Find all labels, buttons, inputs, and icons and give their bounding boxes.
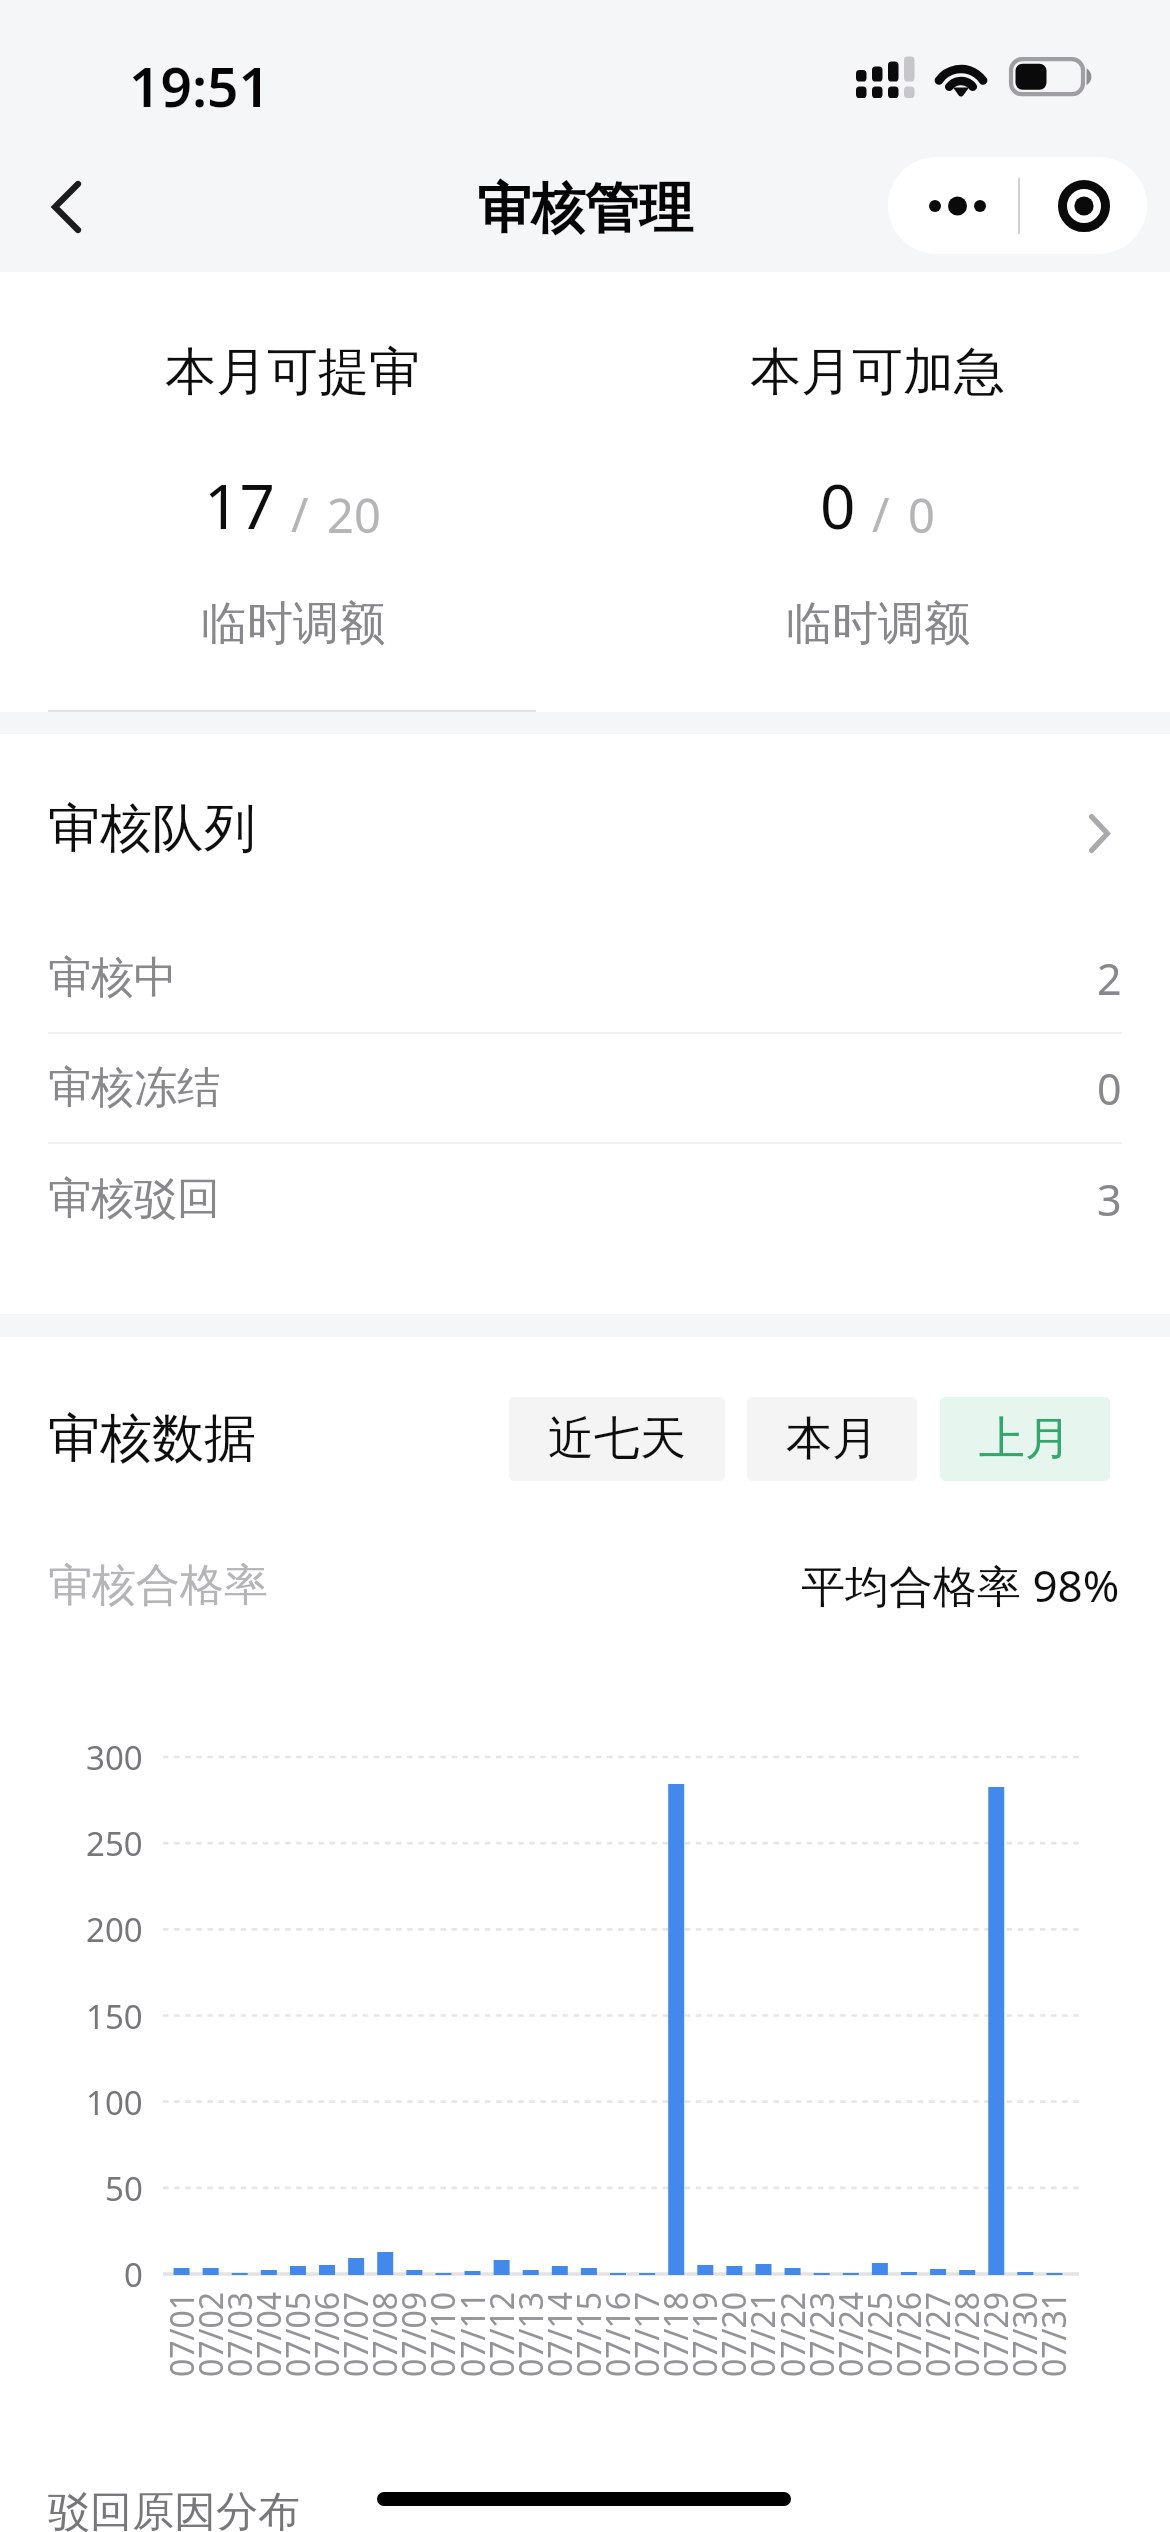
staticText: 17 [204,463,275,547]
staticText: 临时调额 [201,595,385,653]
staticText: 0 [820,463,856,547]
staticText: 200 [86,1907,143,1952]
staticText: / [291,482,309,546]
button[interactable]: 审核冻结 [48,1034,1122,1142]
button[interactable]: Close mini program [1020,157,1147,254]
staticText: 100 [86,2080,143,2125]
staticText: 19:51 [129,48,271,123]
staticText: 审核冻结 [48,1061,220,1115]
staticText: / [872,482,890,546]
staticText: 审核管理 [477,175,693,243]
staticText: 审核队列 [48,796,256,862]
button[interactable]: More [888,157,1018,254]
staticText: 近七天 [548,1410,686,1468]
button[interactable]: 近七天 [509,1397,725,1481]
staticText: 0 [124,2252,143,2297]
staticText: 审核驳回 [48,1172,220,1226]
button[interactable]: 本月可提审 [0,272,585,712]
button[interactable]: 上月 [940,1397,1110,1481]
staticText: 50 [105,2166,143,2211]
staticText: 250 [86,1821,143,1866]
staticText: 审核合格率 [48,1558,268,1613]
button[interactable]: Back [10,150,122,264]
staticText: 150 [86,1994,143,2039]
button[interactable]: 审核中 [48,924,1122,1032]
staticText: 本月 [786,1410,878,1468]
button[interactable]: 本月 [747,1397,917,1481]
staticText: 本月可加急 [750,340,1005,404]
staticText: 平均合格率 98% [801,1555,1120,1615]
staticText: 上月 [979,1410,1071,1468]
button[interactable]: 临时调额 [177,585,409,663]
staticText: 临时调额 [786,595,970,653]
button[interactable]: 本月可加急 [585,272,1170,712]
staticText: 2 [1097,949,1122,1008]
staticText: 本月可提审 [165,340,420,404]
button[interactable]: 审核驳回 [48,1144,1122,1254]
staticText: 审核中 [48,951,177,1005]
staticText: 3 [1097,1170,1122,1229]
staticText: 0 [908,483,935,547]
staticText: 审核数据 [48,1406,256,1472]
staticText: 0 [1097,1059,1122,1118]
button[interactable]: 临时调额 [762,585,994,663]
button[interactable]: 审核队列 [0,734,1170,924]
staticText: 300 [86,1735,143,1780]
staticText: 20 [327,483,381,547]
staticText: 驳回原因分布 [48,2486,300,2532]
